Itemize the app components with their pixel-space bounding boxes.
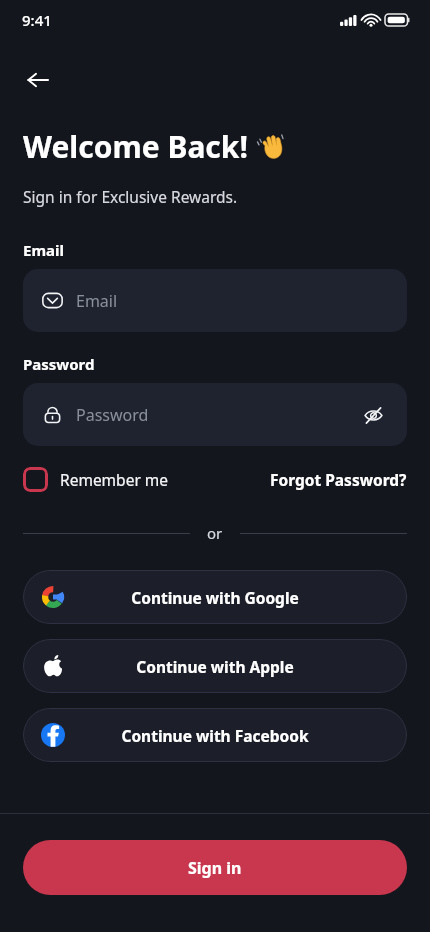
button[interactable]: Forgot Password? — [270, 469, 407, 490]
staticText: Password — [76, 404, 358, 426]
staticText: Remember me — [60, 469, 169, 490]
staticText: Forgot Password? — [270, 469, 407, 490]
staticText: Email — [23, 240, 64, 260]
button[interactable]: Continue with Facebook — [23, 708, 407, 762]
staticText: Continue with Facebook — [121, 725, 309, 746]
button[interactable]: Password — [23, 383, 407, 446]
button[interactable]: Remember me — [23, 467, 169, 492]
staticText: Email — [76, 290, 388, 312]
button[interactable]: Continue with Apple — [23, 639, 407, 693]
button[interactable]: Back — [16, 58, 60, 102]
button[interactable]: Continue with Google — [23, 570, 407, 624]
staticText: Sign in for Exclusive Rewards. — [23, 186, 238, 207]
button[interactable]: Email — [23, 269, 407, 332]
button[interactable]: Sign in — [23, 840, 407, 895]
staticText: Continue with Google — [131, 587, 299, 608]
staticText: Sign in — [188, 857, 242, 879]
staticText: Continue with Apple — [136, 656, 294, 677]
staticText: or — [207, 523, 223, 543]
staticText: 9:41 — [22, 10, 52, 30]
staticText: Password — [23, 354, 95, 374]
staticText: Welcome Back! — [23, 126, 248, 167]
button[interactable]: Show password — [358, 400, 388, 430]
